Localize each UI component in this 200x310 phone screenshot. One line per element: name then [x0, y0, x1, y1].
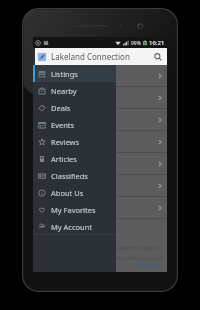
staticText: Events: [51, 120, 75, 130]
button[interactable]: My Account: [33, 218, 116, 235]
button[interactable]: Events: [33, 116, 116, 133]
button[interactable]: My Favorites: [33, 201, 116, 218]
button[interactable]: [33, 65, 167, 87]
staticText: 99%: [131, 40, 141, 47]
button[interactable]: Nearby: [33, 82, 116, 99]
staticText: 4180 b/cities: [133, 263, 163, 270]
staticText: Lakeland Connection: [51, 51, 130, 62]
button[interactable]: [33, 153, 167, 175]
button[interactable]: Reviews: [33, 133, 116, 150]
button[interactable]: [33, 197, 167, 219]
staticText: Listings: [51, 69, 78, 79]
button[interactable]: [33, 87, 167, 109]
staticText: Articles: [51, 154, 77, 164]
staticText: Deals: [51, 103, 71, 113]
staticText: About Us: [51, 188, 84, 198]
button[interactable]: [33, 109, 167, 131]
staticText: Nearby: [51, 86, 77, 96]
button[interactable]: Listings: [33, 65, 116, 82]
button[interactable]: Classifieds: [33, 167, 116, 184]
button[interactable]: [33, 175, 167, 197]
button[interactable]: About Us: [33, 184, 116, 201]
staticText: Classifieds: [51, 171, 88, 181]
staticText: My Account: [51, 222, 93, 232]
staticText: My Favorites: [51, 205, 96, 215]
button[interactable]: Search: [151, 50, 164, 63]
staticText: 16:21: [149, 39, 165, 47]
staticText: Lakeland Media Inc.: [116, 245, 163, 252]
staticText: Reviews: [51, 137, 80, 147]
button[interactable]: Articles: [33, 150, 116, 167]
button[interactable]: Deals: [33, 99, 116, 116]
button[interactable]: [33, 131, 167, 153]
staticText: powered by Lakeland: [113, 255, 163, 262]
